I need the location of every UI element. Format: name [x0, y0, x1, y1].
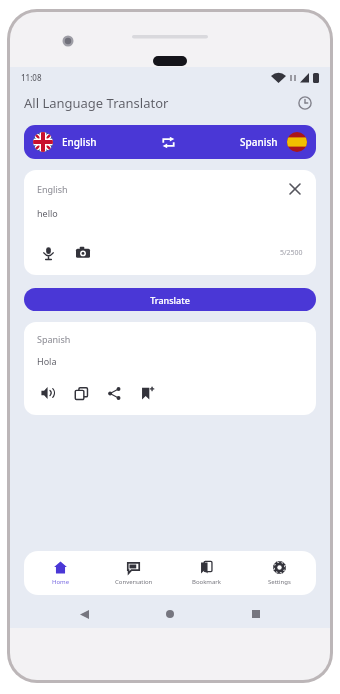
- button[interactable]: Home: [158, 602, 182, 626]
- staticText: 5/2500: [280, 248, 303, 258]
- staticText: Bookmark: [192, 578, 222, 586]
- button[interactable]: Settings: [243, 551, 316, 595]
- button[interactable]: Speak translation: [37, 382, 59, 404]
- staticText: Home: [52, 578, 70, 586]
- button[interactable]: History: [294, 92, 316, 114]
- staticText: Spanish: [37, 333, 71, 345]
- staticText: Conversation: [115, 578, 153, 586]
- staticText: English: [62, 135, 97, 149]
- button[interactable]: Copy translation: [70, 382, 92, 404]
- button[interactable]: Camera input: [72, 242, 94, 264]
- button[interactable]: Home: [24, 551, 97, 595]
- button[interactable]: Clear text: [287, 181, 303, 197]
- button[interactable]: Conversation: [97, 551, 170, 595]
- staticText: English: [37, 183, 68, 195]
- button[interactable]: Voice input: [37, 242, 59, 264]
- staticText: 11:08: [21, 72, 42, 83]
- button[interactable]: Bookmark: [170, 551, 243, 595]
- staticText: All Language Translator: [24, 94, 169, 112]
- staticText: hello: [37, 207, 58, 219]
- button[interactable]: Swap languages: [155, 129, 181, 155]
- button[interactable]: Translate: [24, 288, 316, 311]
- staticText: Translate: [150, 294, 190, 306]
- button[interactable]: Back: [72, 602, 96, 626]
- staticText: Settings: [268, 578, 291, 586]
- staticText: Hola: [37, 355, 57, 367]
- button[interactable]: English: [24, 125, 316, 159]
- button[interactable]: Recent apps: [244, 602, 268, 626]
- button[interactable]: English: [24, 170, 316, 275]
- staticText: Spanish: [240, 135, 278, 149]
- button[interactable]: Share translation: [103, 382, 125, 404]
- button[interactable]: Bookmark translation: [136, 382, 158, 404]
- button[interactable]: Spanish: [24, 322, 316, 415]
